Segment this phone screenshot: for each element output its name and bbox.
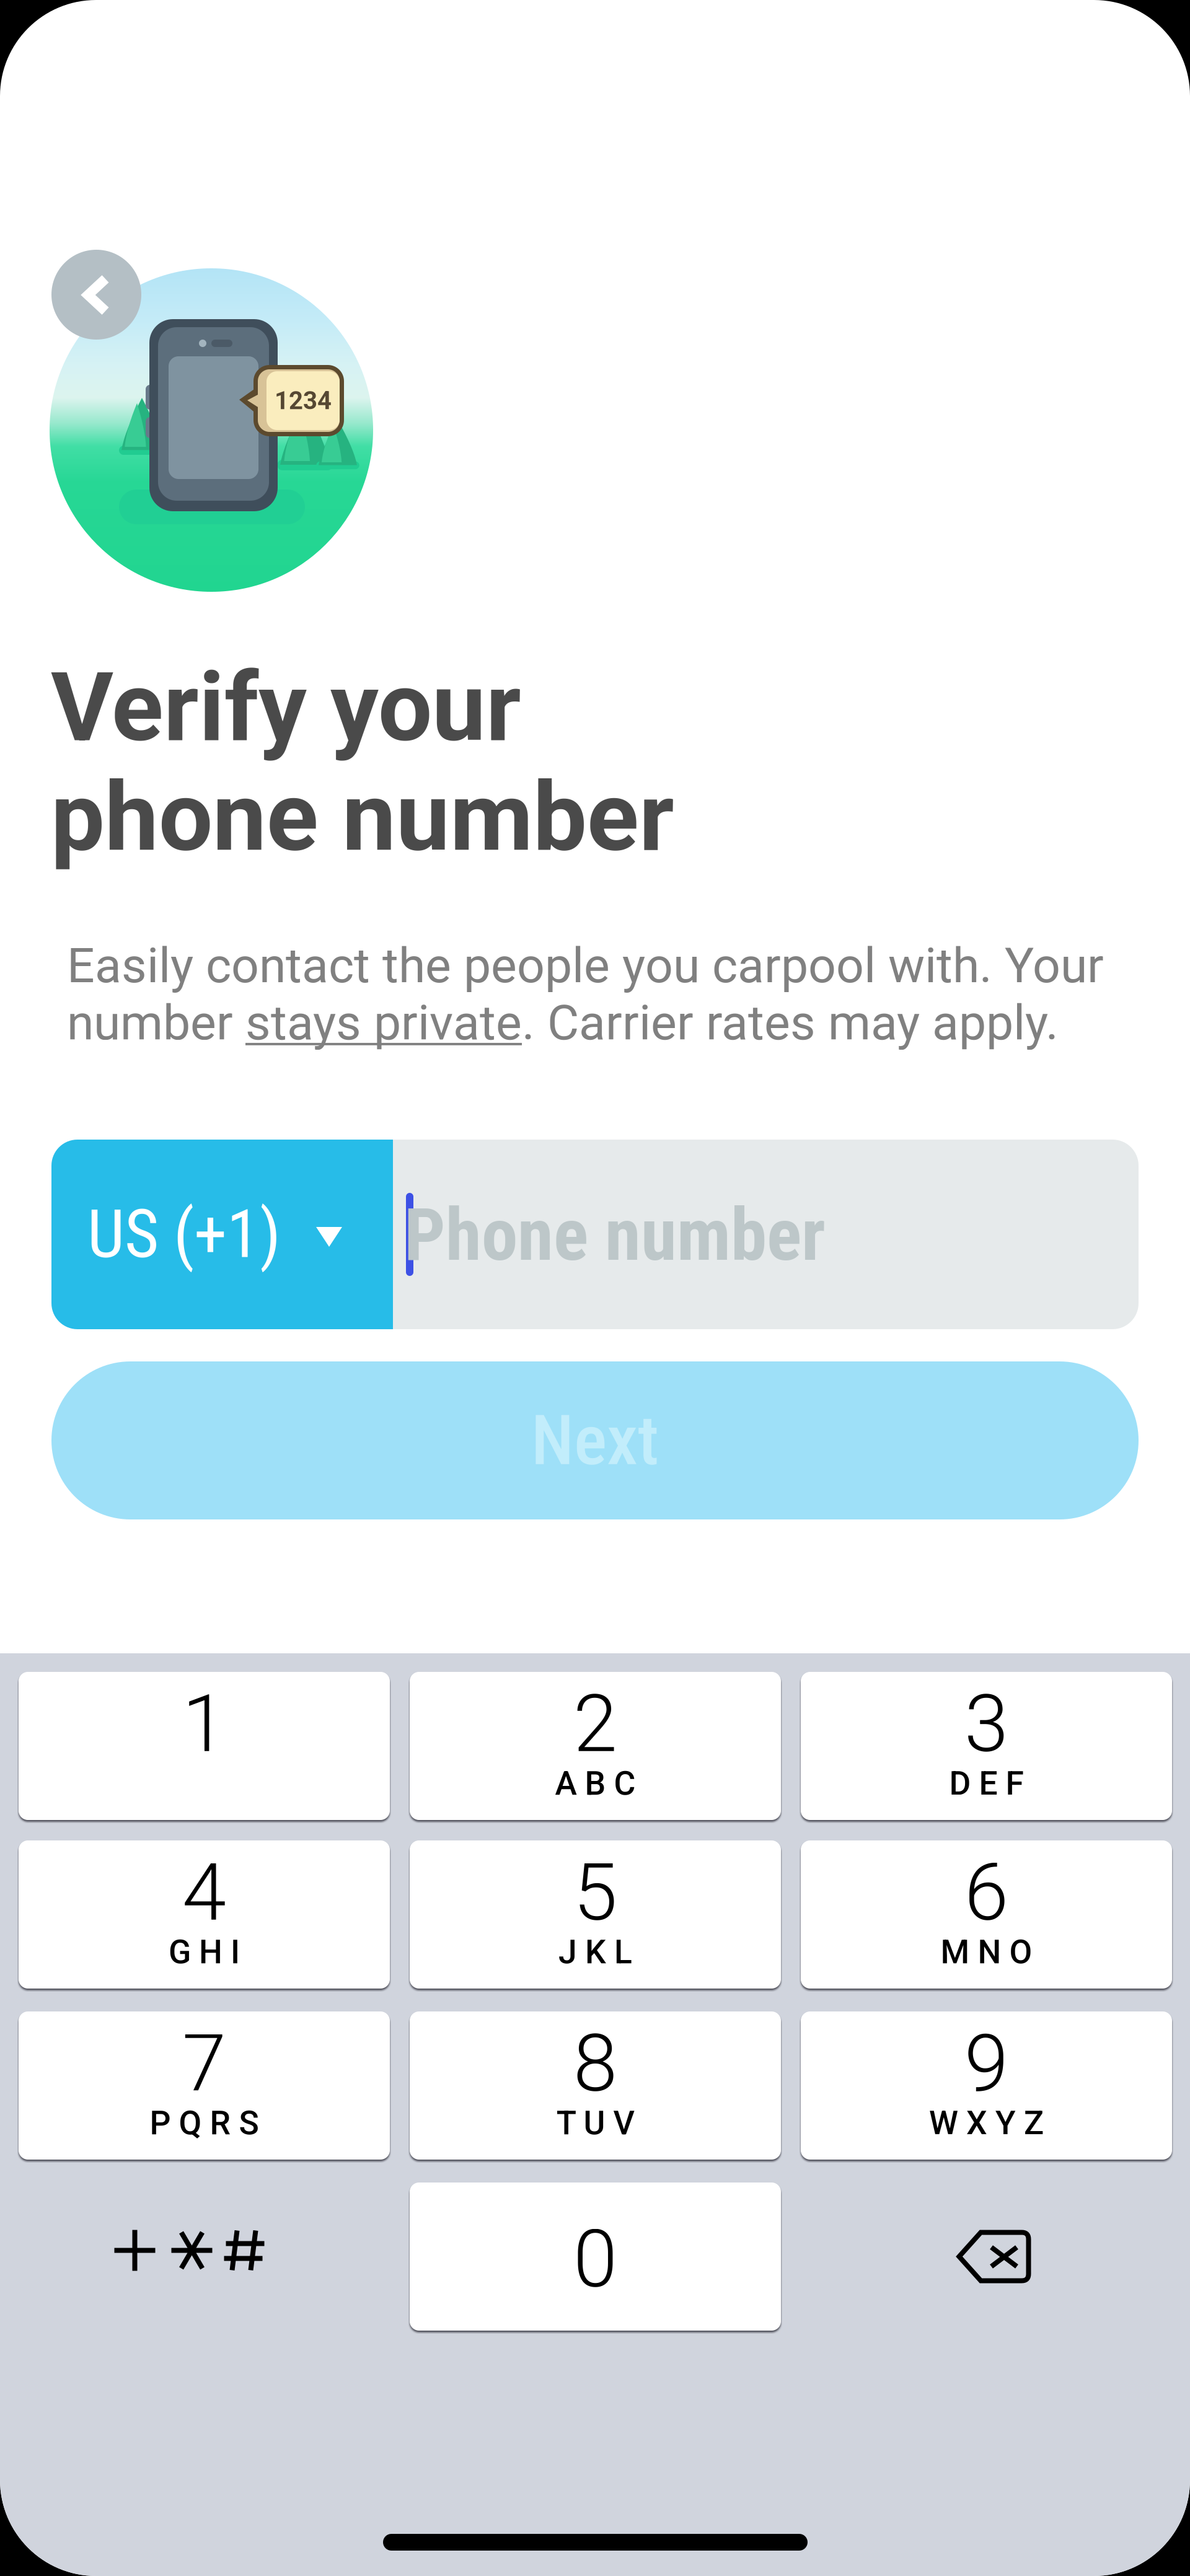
button[interactable]: 0 xyxy=(410,2183,781,2331)
staticText: phone number xyxy=(51,761,674,873)
staticText: US (+1) xyxy=(87,1196,281,1273)
button[interactable]: 4 xyxy=(19,1840,390,1989)
staticText: 1234 xyxy=(275,386,332,415)
staticText: Verify your xyxy=(51,651,521,764)
staticText: 6 xyxy=(964,1846,1008,1939)
button[interactable]: 2 xyxy=(410,1672,781,1820)
button[interactable]: 8 xyxy=(410,2011,781,2160)
staticText: M N O xyxy=(941,1933,1032,1971)
staticText: 1 xyxy=(182,1677,226,1770)
button[interactable]: Plus, star, hash xyxy=(19,2183,390,2331)
button[interactable]: US (+1) xyxy=(51,1140,393,1329)
button[interactable]: Next xyxy=(51,1361,1139,1519)
staticText: 2 xyxy=(573,1677,617,1770)
staticText: W X Y Z xyxy=(929,2104,1044,2142)
staticText: T U V xyxy=(556,2104,634,2142)
staticText: 3 xyxy=(964,1677,1008,1770)
button[interactable]: Back xyxy=(51,250,141,340)
staticText: 4 xyxy=(182,1846,226,1939)
staticText: 0 xyxy=(573,2213,617,2306)
staticText: P Q R S xyxy=(150,2104,259,2142)
button[interactable]: 7 xyxy=(19,2011,390,2160)
staticText: J K L xyxy=(558,1933,632,1971)
staticText: Easily contact the people you carpool wi… xyxy=(67,937,1104,994)
staticText: G H I xyxy=(169,1933,240,1971)
staticText: D E F xyxy=(949,1764,1024,1803)
staticText: 8 xyxy=(573,2017,617,2110)
staticText: number stays private. Carrier rates may … xyxy=(67,994,1059,1051)
button[interactable]: 1 xyxy=(19,1672,390,1820)
button[interactable]: 6 xyxy=(801,1840,1172,1989)
staticText: 7 xyxy=(182,2017,226,2110)
staticText: 9 xyxy=(964,2017,1008,2110)
staticText: A B C xyxy=(555,1764,636,1803)
button[interactable]: 5 xyxy=(410,1840,781,1989)
button[interactable]: 9 xyxy=(801,2011,1172,2160)
button[interactable]: Delete xyxy=(801,2183,1172,2331)
button[interactable]: 3 xyxy=(801,1672,1172,1820)
staticText: 5 xyxy=(573,1846,617,1939)
staticText: Phone number xyxy=(404,1192,826,1278)
staticText: Next xyxy=(531,1400,659,1481)
